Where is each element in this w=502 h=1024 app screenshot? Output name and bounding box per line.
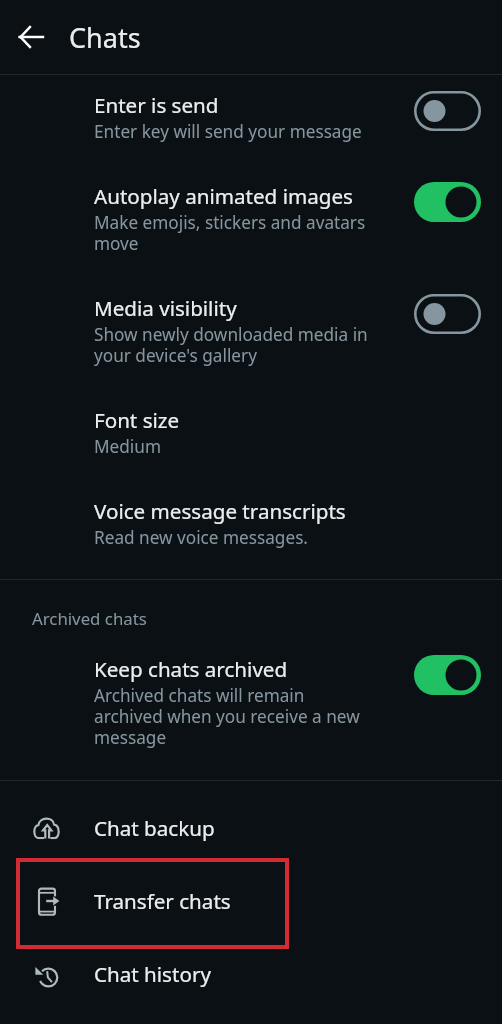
staticText: Media visibility [94,296,237,322]
button[interactable]: Media visibility [0,296,502,408]
staticText: Font size [94,408,180,434]
staticText: Archived chats will remain archived when… [94,686,371,749]
staticText: Medium [94,437,161,458]
button[interactable]: Off [414,294,481,334]
button[interactable]: On [414,182,481,222]
button[interactable]: Chat backup [0,792,502,865]
staticText: Enter key will send your message [94,122,362,143]
button[interactable]: Transfer chats [0,865,502,938]
button[interactable]: Chat history [0,938,502,1011]
staticText: Autoplay animated images [94,184,353,210]
staticText: Transfer chats [94,889,231,915]
button[interactable]: On [414,655,481,695]
staticText: Voice message transcripts [94,499,346,525]
staticText: Read new voice messages. [94,528,308,549]
staticText: Chat history [94,962,211,988]
staticText: Keep chats archived [94,657,288,683]
staticText: Chats [69,19,141,56]
staticText: Show newly downloaded media in your devi… [94,325,371,367]
button[interactable]: Autoplay animated images [0,184,502,296]
button[interactable]: Off [414,91,481,131]
button[interactable]: Enter is send [0,93,502,184]
staticText: Chat backup [94,816,215,842]
staticText: Enter is send [94,93,219,119]
button[interactable]: Back [8,14,54,60]
button[interactable]: Keep chats archived [0,657,502,780]
button[interactable]: Voice message transcripts [0,499,502,579]
staticText: Archived chats [32,609,147,630]
button[interactable]: Font size [0,408,502,499]
staticText: Make emojis, stickers and avatars move [94,213,371,255]
